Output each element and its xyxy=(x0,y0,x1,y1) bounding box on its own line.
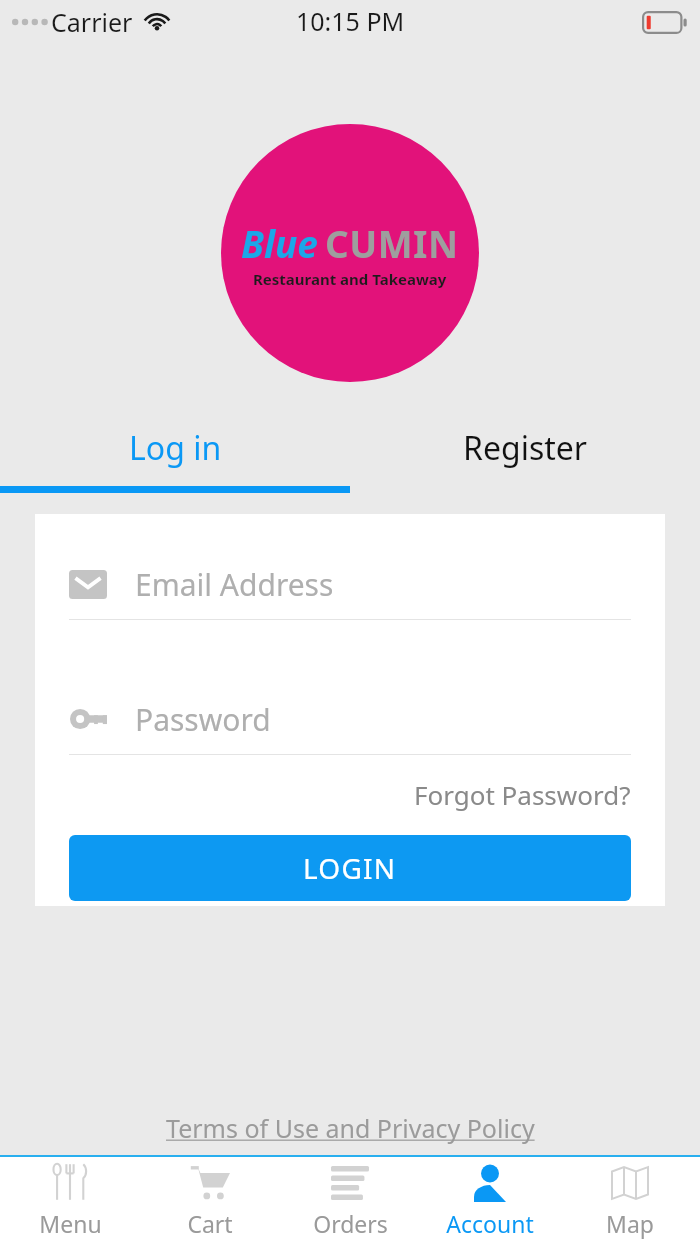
button[interactable]: Map xyxy=(560,1157,700,1244)
staticText: Menu xyxy=(39,1208,102,1239)
button[interactable]: Account xyxy=(420,1157,560,1244)
staticText: CUMIN xyxy=(325,218,459,268)
button[interactable]: LOGIN xyxy=(69,835,631,901)
button[interactable]: Log in xyxy=(0,419,350,477)
button[interactable]: Password xyxy=(69,696,631,755)
staticText: Account xyxy=(446,1208,534,1239)
staticText: Log in xyxy=(129,426,222,470)
button[interactable]: Terms of Use and Privacy Policy xyxy=(160,1105,541,1151)
staticText: Terms of Use and Privacy Policy xyxy=(166,1111,535,1145)
staticText: Carrier xyxy=(51,5,133,39)
staticText: 10:15 PM xyxy=(296,4,405,38)
button[interactable]: Forgot Password? xyxy=(414,773,631,816)
staticText: LOGIN xyxy=(303,849,397,887)
button[interactable]: Cart xyxy=(140,1157,280,1244)
staticText: Forgot Password? xyxy=(414,777,631,812)
staticText: Register xyxy=(463,426,588,470)
button[interactable]: Orders xyxy=(280,1157,420,1244)
button[interactable]: Email Address xyxy=(69,561,631,620)
staticText: Restaurant and Takeaway xyxy=(253,269,447,289)
staticText: Email Address xyxy=(135,564,334,605)
staticText: Blue xyxy=(241,218,318,268)
staticText: Cart xyxy=(187,1208,233,1239)
button[interactable]: Register xyxy=(350,419,700,477)
other: Account xyxy=(470,1164,510,1202)
staticText: Orders xyxy=(313,1208,388,1239)
staticText: Map xyxy=(606,1208,654,1239)
staticText: Password xyxy=(135,699,271,740)
button[interactable]: Menu xyxy=(0,1157,140,1244)
